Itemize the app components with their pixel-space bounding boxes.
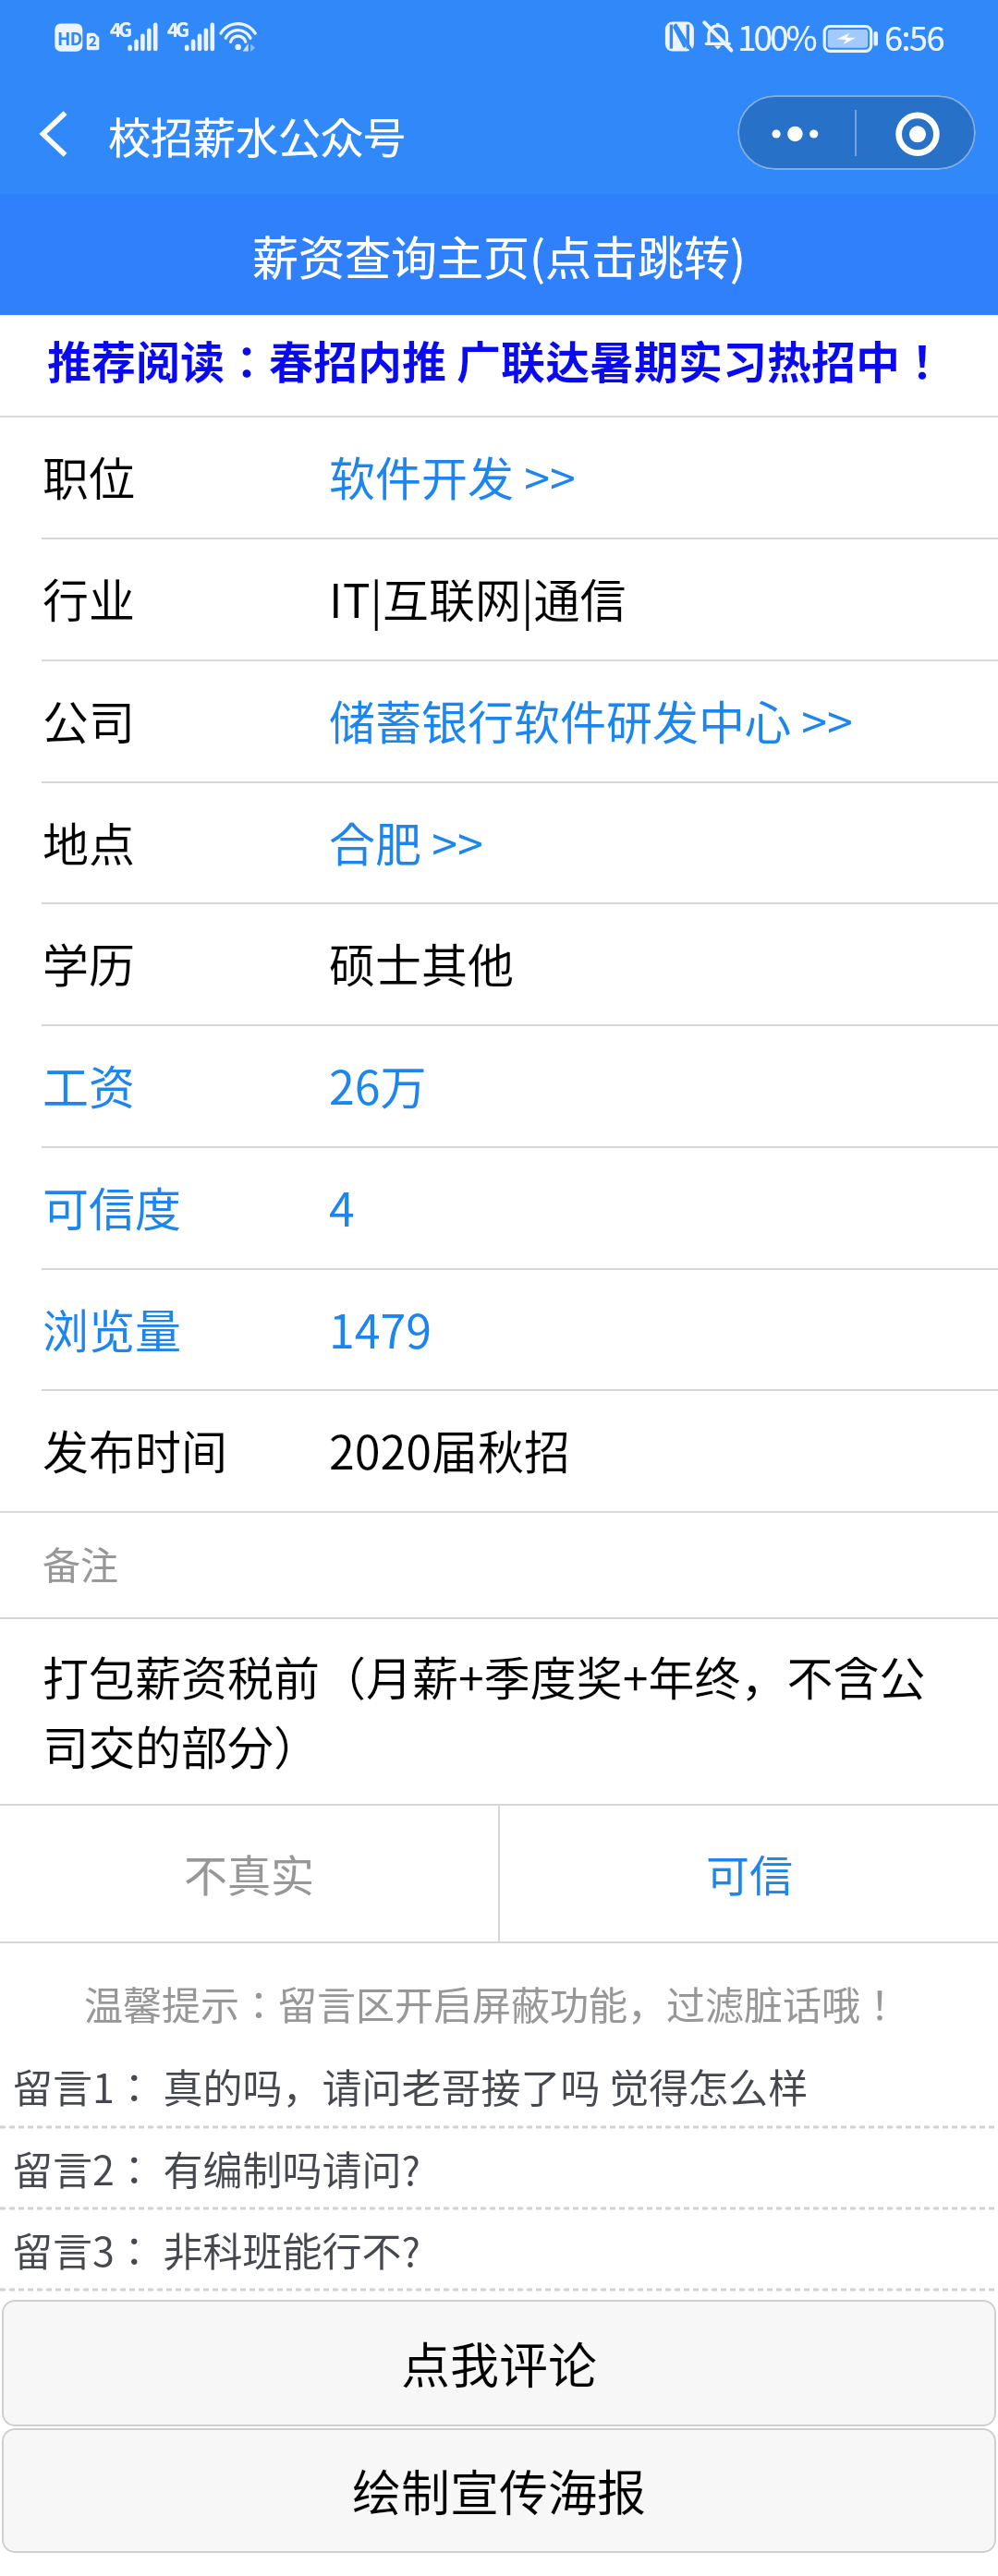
staticText: 点我评论 bbox=[401, 2328, 597, 2399]
staticText: 推荐阅读：春招内推 广联达暑期实习热招中！ bbox=[47, 327, 944, 392]
staticText: 储蓄银行软件研发中心 >> bbox=[329, 686, 853, 753]
staticText: HD bbox=[57, 25, 82, 51]
staticText: 温馨提示：留言区开启屏蔽功能，过滤脏话哦！ bbox=[84, 1975, 900, 2031]
button[interactable]: 公司 bbox=[0, 661, 998, 781]
staticText: 6:56 bbox=[884, 12, 943, 60]
staticText: 公司 bbox=[43, 686, 135, 753]
staticText: 4 bbox=[329, 1173, 355, 1240]
staticText: 行业 bbox=[43, 564, 135, 631]
button[interactable]: 留言3： 非科班能行不? bbox=[0, 2209, 998, 2289]
staticText: 工资 bbox=[43, 1051, 135, 1118]
staticText: 26万 bbox=[329, 1051, 427, 1118]
button[interactable]: More options bbox=[737, 95, 856, 170]
button[interactable]: 发布时间 bbox=[0, 1391, 998, 1511]
staticText: 职位 bbox=[43, 442, 135, 509]
staticText: 2 bbox=[89, 30, 97, 51]
staticText: 可信度 bbox=[43, 1173, 181, 1240]
staticText: 留言2： 有编制吗请问? bbox=[13, 2139, 420, 2196]
staticText: 4G bbox=[110, 15, 129, 42]
staticText: 薪资查询主页(点击跳转) bbox=[252, 222, 746, 288]
button[interactable]: 职位 bbox=[0, 417, 998, 538]
staticText: IT|互联网|通信 bbox=[329, 564, 627, 631]
staticText: 绘制宣传海报 bbox=[352, 2455, 646, 2526]
staticText: 合肥 >> bbox=[329, 808, 483, 875]
staticText: 可信 bbox=[706, 1841, 793, 1904]
staticText: 软件开发 >> bbox=[329, 442, 576, 509]
staticText: 不真实 bbox=[184, 1841, 314, 1904]
staticText: 留言1： 真的吗，请问老哥接了吗 觉得怎么样 bbox=[13, 2057, 809, 2114]
button[interactable]: 可信度 bbox=[0, 1148, 998, 1268]
staticText: 校招薪水公众号 bbox=[108, 104, 406, 166]
button[interactable]: 薪资查询主页(点击跳转) bbox=[0, 194, 998, 315]
button[interactable]: 点我评论 bbox=[2, 2300, 996, 2426]
staticText: 1479 bbox=[329, 1295, 432, 1361]
staticText: 4G bbox=[167, 15, 187, 42]
button[interactable]: 学历 bbox=[0, 904, 998, 1024]
staticText: 打包薪资税前（月薪+季度奖+年终，不含公司交的部分） bbox=[43, 1642, 970, 1778]
button[interactable]: 不真实 bbox=[0, 1806, 498, 1941]
staticText: 100% bbox=[737, 11, 815, 61]
staticText: 浏览量 bbox=[43, 1295, 181, 1361]
button[interactable]: 行业 bbox=[0, 539, 998, 659]
button[interactable]: 地点 bbox=[0, 783, 998, 902]
button[interactable]: 工资 bbox=[0, 1026, 998, 1146]
staticText: 备注 bbox=[43, 1535, 118, 1590]
button[interactable]: 推荐阅读：春招内推 广联达暑期实习热招中！ bbox=[0, 315, 998, 416]
staticText: 硕士其他 bbox=[329, 929, 514, 996]
staticText: 留言3： 非科班能行不? bbox=[13, 2220, 420, 2278]
staticText: 发布时间 bbox=[43, 1416, 227, 1482]
button[interactable]: 浏览量 bbox=[0, 1270, 998, 1389]
button[interactable]: 绘制宣传海报 bbox=[2, 2428, 996, 2553]
staticText: 地点 bbox=[43, 808, 135, 875]
button[interactable]: Close mini program bbox=[856, 95, 976, 170]
button[interactable]: 留言1： 真的吗，请问老哥接了吗 觉得怎么样 bbox=[0, 2045, 998, 2126]
button[interactable]: 可信 bbox=[500, 1806, 998, 1941]
button[interactable]: Back bbox=[13, 91, 92, 177]
button[interactable]: 留言2： 有编制吗请问? bbox=[0, 2128, 998, 2207]
staticText: 2020届秋招 bbox=[329, 1416, 570, 1482]
staticText: 学历 bbox=[43, 929, 135, 996]
